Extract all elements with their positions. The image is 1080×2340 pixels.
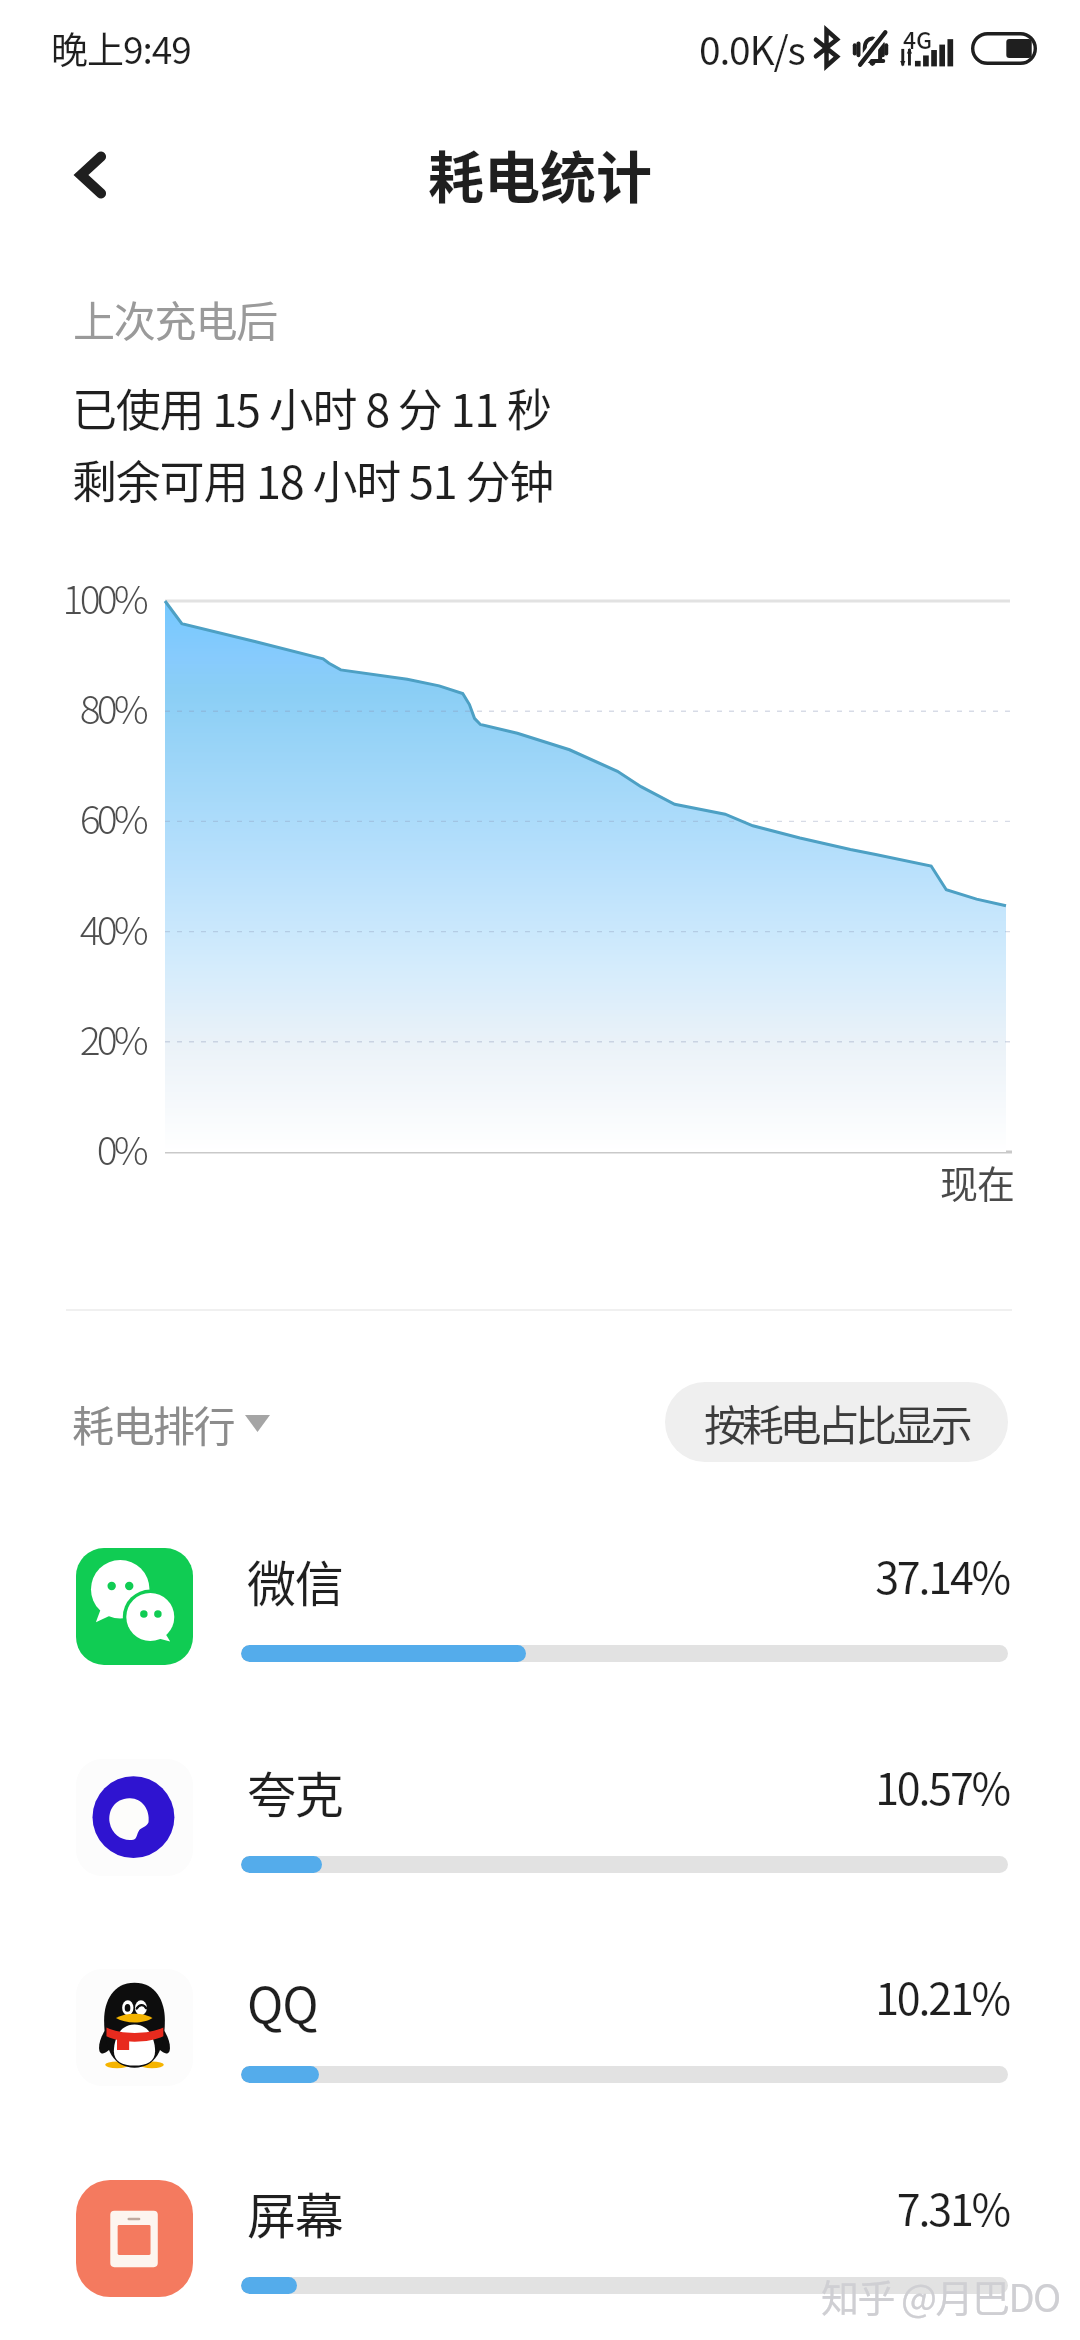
- staticText: 0.0K/s: [699, 20, 805, 76]
- staticText: 知乎 @月巴DO: [821, 2268, 1060, 2323]
- staticText: 10.57%: [875, 1755, 1009, 1817]
- button[interactable]: 按耗电占比显示: [665, 1382, 1008, 1462]
- button[interactable]: Back: [46, 130, 136, 220]
- staticText: 60%: [0, 789, 145, 845]
- staticText: 按耗电占比显示: [704, 1392, 969, 1453]
- staticText: 上次充电后: [73, 288, 278, 349]
- staticText: 40%: [0, 900, 145, 956]
- staticText: 37.14%: [875, 1544, 1009, 1606]
- staticText: 10.21%: [875, 1965, 1009, 2027]
- staticText: 微信: [247, 1545, 343, 1616]
- staticText: QQ: [247, 1966, 318, 2037]
- staticText: 耗电排行: [72, 1393, 235, 1454]
- staticText: 0%: [0, 1120, 145, 1176]
- staticText: 耗电统计: [428, 133, 652, 214]
- staticText: 7.31%: [896, 2176, 1009, 2238]
- button[interactable]: [60, 2154, 1020, 2324]
- staticText: 晚上9:49: [51, 21, 191, 75]
- button[interactable]: [60, 1733, 1020, 1903]
- staticText: 已使用 15 小时 8 分 11 秒: [72, 375, 551, 440]
- staticText: 屏幕: [247, 2177, 343, 2248]
- button[interactable]: 耗电排行: [70, 1383, 272, 1463]
- staticText: 剩余可用 18 小时 51 分钟: [72, 447, 554, 512]
- staticText: 现在: [940, 1154, 1015, 1209]
- staticText: 4G: [903, 22, 933, 55]
- button[interactable]: [60, 1522, 1020, 1692]
- staticText: 夸克: [247, 1756, 343, 1827]
- staticText: 100%: [0, 569, 145, 625]
- button[interactable]: [60, 1943, 1020, 2113]
- staticText: 20%: [0, 1010, 145, 1066]
- staticText: 80%: [0, 679, 145, 735]
